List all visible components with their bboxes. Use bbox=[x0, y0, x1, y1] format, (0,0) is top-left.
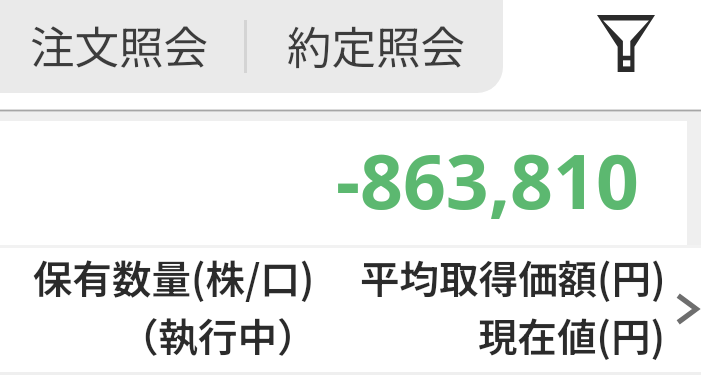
button[interactable]: 保有数量(株/口) bbox=[0, 248, 701, 372]
button[interactable]: Filter bbox=[581, 0, 670, 88]
staticText: （執行中） bbox=[119, 306, 317, 363]
button[interactable]: 注文照会 bbox=[0, 0, 244, 91]
staticText: 現在値(円) bbox=[478, 306, 665, 363]
staticText: 約定照会 bbox=[287, 12, 466, 76]
button[interactable]: -863,810 bbox=[0, 121, 687, 245]
staticText: 平均取得価額(円) bbox=[360, 248, 666, 305]
staticText: 注文照会 bbox=[30, 12, 209, 76]
staticText: 保有数量(株/口) bbox=[33, 248, 315, 305]
button[interactable]: 約定照会 bbox=[247, 0, 503, 91]
staticText: -863,810 bbox=[336, 129, 639, 231]
